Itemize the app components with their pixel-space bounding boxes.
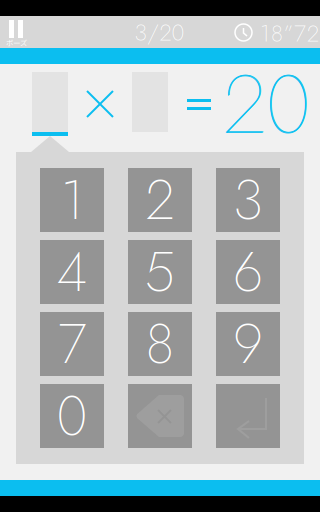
button[interactable]: 0 (40, 384, 104, 448)
staticText: 5 (144, 232, 175, 311)
staticText: 20 (224, 45, 311, 163)
button[interactable]: 6 (216, 240, 280, 304)
staticText: 4 (56, 232, 87, 311)
button[interactable]: 5 (128, 240, 192, 304)
staticText: ポーズ (6, 37, 27, 48)
staticText: 20 (223, 46, 310, 163)
staticText: 20 (223, 45, 310, 163)
button[interactable]: 7 (40, 312, 104, 376)
staticText: 1 8 ” 7 2 (260, 17, 319, 50)
staticText: 1 (60, 160, 83, 239)
button[interactable]: Pause (0, 16, 44, 48)
button[interactable]: 3 (216, 168, 280, 232)
button[interactable]: 1 (40, 168, 104, 232)
button[interactable]: 4 (40, 240, 104, 304)
staticText: 8 (145, 304, 174, 383)
staticText: 7 (58, 304, 86, 383)
button[interactable]: Delete (128, 384, 192, 448)
staticText: 9 (233, 304, 263, 383)
button[interactable]: 9 (216, 312, 280, 376)
staticText: 3 (233, 160, 263, 239)
staticText: 0 (56, 376, 87, 455)
button[interactable]: 2 (128, 168, 192, 232)
button[interactable]: 8 (128, 312, 192, 376)
staticText: 6 (233, 232, 263, 311)
staticText: 3 / 20 (134, 16, 184, 49)
staticText: 2 (145, 160, 174, 239)
